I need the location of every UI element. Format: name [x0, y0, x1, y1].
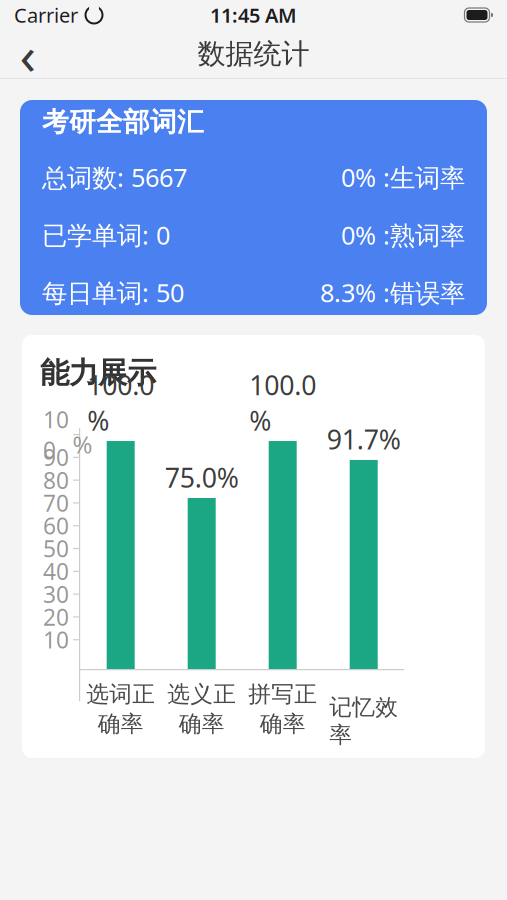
- staticText: 75.0%: [165, 460, 239, 495]
- staticText: %: [73, 428, 93, 460]
- staticText: 10: [43, 625, 69, 655]
- staticText: 100: [43, 404, 69, 465]
- staticText: 确率: [260, 710, 306, 738]
- staticText: 20: [43, 602, 69, 632]
- staticText: 70: [43, 488, 69, 518]
- staticText: 100.0%: [249, 367, 316, 438]
- staticText: 100.0%: [87, 367, 154, 438]
- staticText: 8.3% :错误率: [320, 276, 465, 309]
- staticText: 80: [43, 465, 69, 495]
- staticText: 30: [43, 579, 69, 609]
- staticText: 数据统计: [197, 37, 309, 71]
- staticText: 已学单词: 0: [42, 218, 170, 252]
- staticText: 90: [43, 442, 69, 472]
- staticText: 11:45 AM: [210, 2, 297, 28]
- staticText: 确率: [98, 710, 144, 738]
- button[interactable]: Back: [6, 32, 50, 76]
- staticText: 40: [43, 556, 69, 586]
- staticText: ‹: [19, 19, 36, 89]
- staticText: 每日单词: 50: [42, 276, 184, 309]
- staticText: 总词数: 5667: [42, 160, 187, 194]
- staticText: 确率: [179, 710, 225, 738]
- staticText: 选义正: [167, 680, 236, 708]
- staticText: 能力展示: [40, 355, 156, 391]
- staticText: 60: [43, 511, 69, 541]
- staticText: 0% :生词率: [341, 160, 465, 194]
- staticText: 考研全部词汇: [42, 106, 204, 138]
- staticText: 0% :熟词率: [341, 218, 465, 252]
- staticText: 91.7%: [327, 421, 401, 457]
- staticText: 记忆效率: [329, 693, 398, 749]
- staticText: Carrier: [14, 2, 78, 28]
- staticText: 拼写正: [248, 680, 317, 708]
- staticText: 50: [43, 533, 69, 564]
- staticText: 选词正: [86, 680, 155, 708]
